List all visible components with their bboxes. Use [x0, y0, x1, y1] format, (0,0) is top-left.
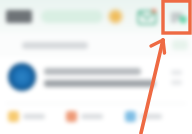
button[interactable]: Weather	[107, 8, 124, 25]
button[interactable]: Mail	[136, 6, 158, 28]
button[interactable]: Logo	[6, 10, 32, 23]
button[interactable]: Orders	[168, 7, 188, 27]
button[interactable]: Tab	[41, 10, 103, 23]
button[interactable]: Highlighted orders icon	[163, 1, 190, 33]
button[interactable]: Action one	[8, 111, 66, 122]
button[interactable]: Avatar	[8, 63, 36, 91]
button[interactable]: Action three	[125, 111, 184, 122]
button[interactable]: Search	[22, 42, 88, 49]
button[interactable]: Action two	[66, 111, 125, 122]
